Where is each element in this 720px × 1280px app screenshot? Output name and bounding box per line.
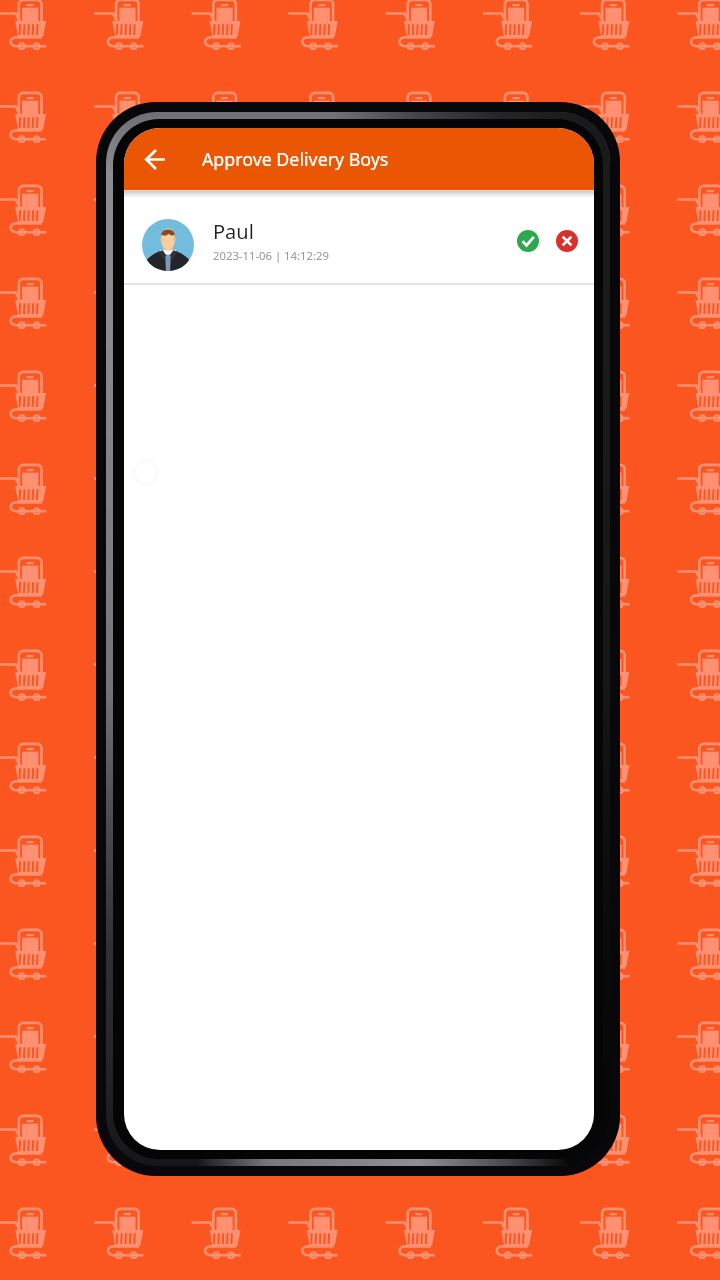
staticText: Approve Delivery Boys (202, 147, 389, 171)
button[interactable]: Approve (510, 223, 546, 259)
staticText: Paul (213, 218, 254, 245)
button[interactable]: Back (133, 138, 175, 180)
button[interactable]: Paul (124, 198, 594, 283)
staticText: 2023-11-06 | 14:12:29 (213, 248, 329, 263)
button[interactable]: Reject (549, 223, 585, 259)
